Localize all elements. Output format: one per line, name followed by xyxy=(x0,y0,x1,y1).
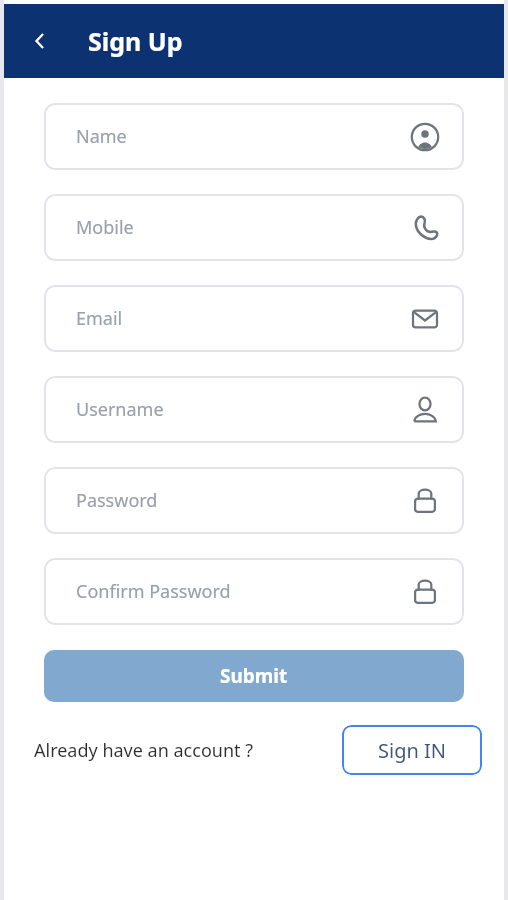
button[interactable]: Back xyxy=(18,19,62,63)
staticText: Already have an account ? xyxy=(34,738,254,763)
button[interactable]: Password xyxy=(44,467,464,534)
button[interactable]: Name xyxy=(44,103,464,170)
button[interactable]: Sign IN xyxy=(342,725,482,775)
button[interactable]: Confirm Password xyxy=(44,558,464,625)
staticText: Sign Up xyxy=(88,24,183,58)
staticText: Sign IN xyxy=(378,737,446,764)
staticText: Name xyxy=(76,124,127,149)
staticText: Email xyxy=(76,306,123,331)
staticText: Mobile xyxy=(76,215,134,240)
button[interactable]: Mobile xyxy=(44,194,464,261)
staticText: Submit xyxy=(220,663,288,689)
button[interactable]: Submit xyxy=(44,650,464,702)
staticText: Confirm Password xyxy=(76,579,231,604)
button[interactable]: Email xyxy=(44,285,464,352)
button[interactable]: Username xyxy=(44,376,464,443)
staticText: Password xyxy=(76,488,158,513)
staticText: Username xyxy=(76,397,164,422)
